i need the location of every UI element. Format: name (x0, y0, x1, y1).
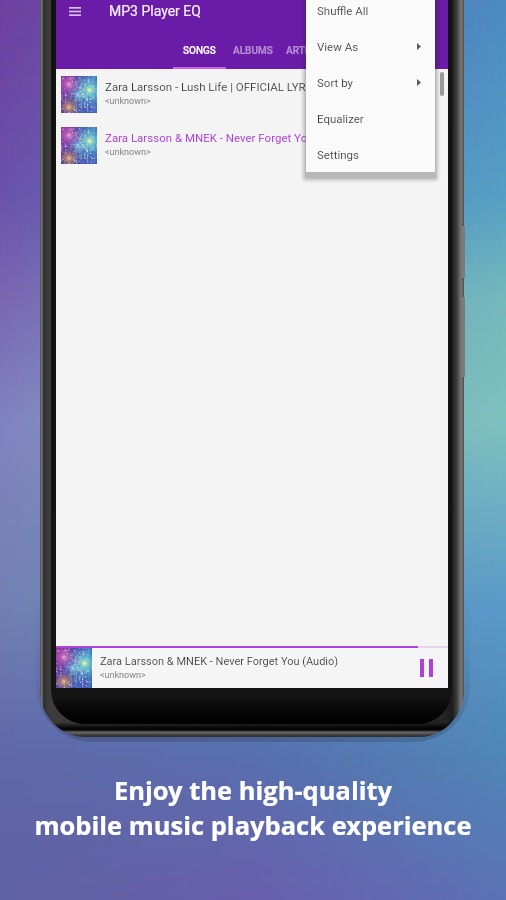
staticText: Equalizer (317, 112, 364, 125)
button[interactable]: Sort by (306, 64, 435, 100)
button[interactable]: Equalizer (306, 100, 435, 136)
staticText: Shuffle All (317, 4, 369, 17)
staticText: Zara Larsson - Lush Life | OFFICIAL LYRI… (105, 80, 324, 93)
button[interactable]: View As (306, 28, 435, 64)
staticText: <unknown> (105, 147, 151, 158)
staticText: ALBUMS (233, 45, 273, 57)
button[interactable]: Zara Larsson - Lush Life | OFFICIAL LYRI… (56, 72, 448, 116)
button[interactable]: SONGS (173, 40, 226, 69)
staticText: Settings (317, 148, 359, 161)
button[interactable]: Shuffle All (306, 0, 435, 28)
staticText: Sort by (317, 76, 354, 89)
button[interactable]: Zara Larsson & MNEK - Never Forget You (… (56, 123, 448, 167)
staticText: Enjoy the high-quality mobile music play… (0, 773, 506, 843)
staticText: Zara Larsson & MNEK - Never Forget You (… (100, 655, 339, 668)
button[interactable]: Open navigation drawer (58, 0, 92, 22)
button[interactable]: Pause (408, 650, 444, 686)
staticText: Zara Larsson & MNEK - Never Forget You (… (105, 131, 354, 144)
staticText: MP3 Player EQ (109, 3, 201, 19)
staticText: <unknown> (105, 96, 151, 107)
staticText: <unknown> (100, 670, 146, 681)
staticText: ARTISTS (286, 45, 326, 57)
button[interactable]: Settings (306, 136, 435, 172)
button[interactable]: ARTISTS (279, 40, 332, 69)
staticText: SONGS (183, 45, 216, 57)
button[interactable]: ALBUMS (226, 40, 279, 69)
staticText: View As (317, 40, 359, 53)
